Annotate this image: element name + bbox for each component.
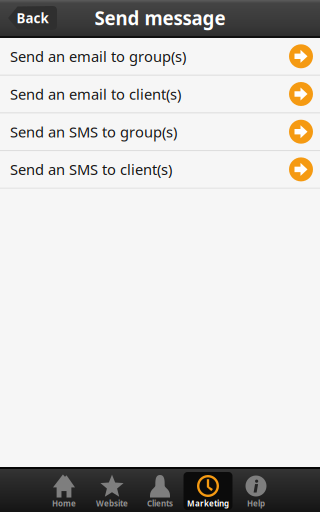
staticText: Home (52, 498, 76, 509)
staticText: Back (16, 9, 48, 27)
button[interactable]: Help (232, 468, 280, 512)
button[interactable]: Send an email to group(s) (0, 38, 320, 75)
button[interactable]: Send an SMS to client(s) (0, 151, 320, 188)
button[interactable]: Send an SMS to group(s) (0, 113, 320, 150)
staticText: Marketing (187, 498, 229, 509)
staticText: Send an SMS to client(s) (10, 160, 172, 179)
button[interactable]: Back (0, 0, 61, 37)
staticText: Send an email to client(s) (10, 84, 181, 104)
button[interactable]: Marketing (184, 468, 232, 512)
staticText: Help (247, 498, 265, 509)
staticText: Clients (147, 498, 173, 509)
button[interactable]: Home (40, 468, 88, 512)
staticText: Send message (94, 6, 225, 30)
button[interactable]: Send an email to client(s) (0, 76, 320, 112)
staticText: Send an email to group(s) (10, 47, 186, 66)
staticText: Website (96, 498, 128, 509)
button[interactable]: Clients (136, 468, 184, 512)
button[interactable]: Website (88, 468, 136, 512)
staticText: Send an SMS to group(s) (10, 122, 177, 141)
